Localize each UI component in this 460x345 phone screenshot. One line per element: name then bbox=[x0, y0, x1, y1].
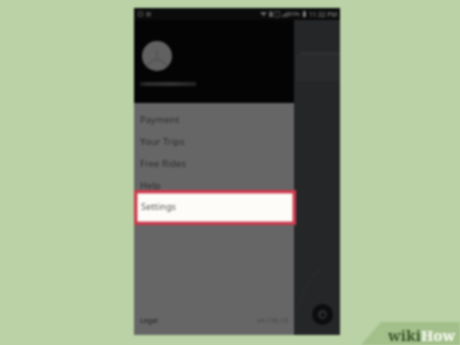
staticText: How bbox=[421, 325, 456, 345]
staticText: Settings bbox=[141, 200, 176, 213]
button[interactable]: Settings bbox=[134, 196, 294, 218]
button[interactable]: Settings bbox=[134, 190, 296, 225]
staticText: Payment bbox=[140, 113, 180, 126]
staticText: 11:32 PM bbox=[309, 10, 338, 19]
button[interactable]: Help bbox=[134, 174, 294, 196]
staticText: Free Rides bbox=[140, 157, 186, 170]
staticText: 85% bbox=[288, 10, 300, 18]
button[interactable]: Payment bbox=[134, 108, 294, 130]
button[interactable]: Your Trips bbox=[134, 130, 294, 152]
staticText: wiki bbox=[388, 325, 421, 345]
button[interactable]: Free Rides bbox=[134, 152, 294, 174]
button[interactable]: Legal bbox=[140, 316, 158, 326]
button[interactable]: Current location bbox=[312, 304, 333, 325]
staticText: Settings bbox=[140, 201, 177, 214]
button[interactable]: Profile photo bbox=[142, 41, 172, 71]
staticText: v4.156.10 bbox=[257, 316, 289, 326]
staticText: Help bbox=[140, 179, 161, 192]
staticText: Your Trips bbox=[140, 135, 185, 148]
staticText: Legal bbox=[140, 316, 158, 326]
